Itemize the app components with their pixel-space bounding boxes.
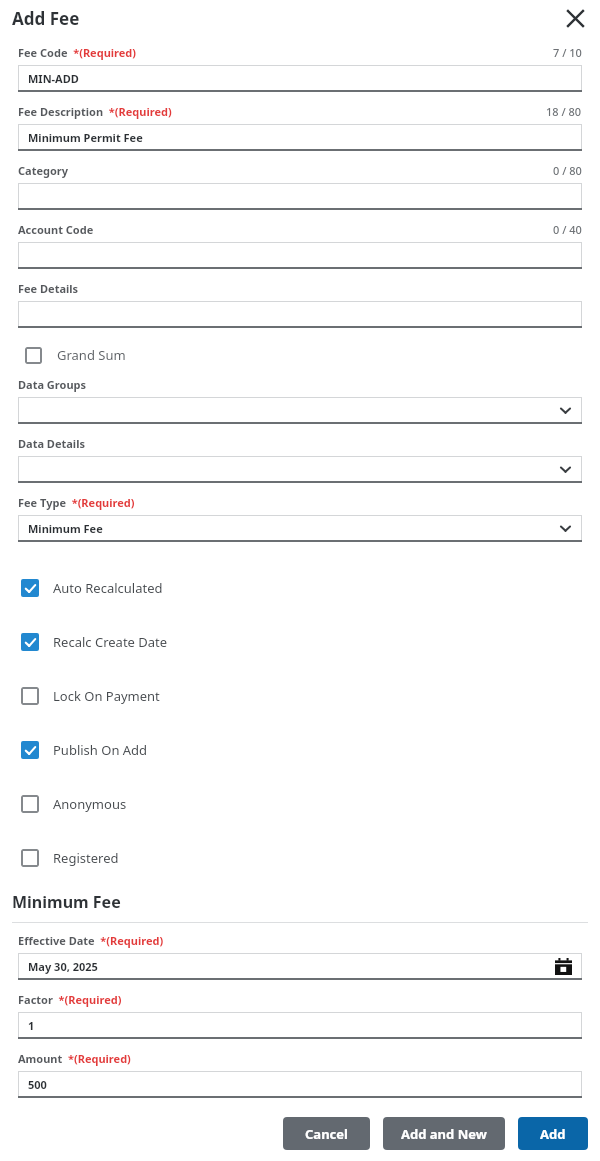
- staticText: 7 / 10: [553, 45, 582, 60]
- staticText: May 30, 2025: [28, 959, 98, 974]
- staticText: 0 / 80: [553, 163, 582, 178]
- button[interactable]: Minimum Fee: [18, 515, 582, 542]
- staticText: MIN-ADD: [28, 71, 79, 86]
- staticText: Minimum Fee: [12, 891, 121, 913]
- button[interactable]: Add: [518, 1117, 588, 1150]
- button[interactable]: Grand Sum: [18, 342, 582, 368]
- staticText: Lock On Payment: [53, 687, 160, 705]
- staticText: Fee Details: [18, 281, 79, 296]
- button[interactable]: Cancel: [283, 1117, 370, 1150]
- staticText: 500: [28, 1077, 47, 1092]
- staticText: Factor *(Required): [18, 992, 122, 1007]
- staticText: Add Fee: [12, 7, 80, 30]
- staticText: Anonymous: [53, 795, 127, 813]
- button[interactable]: [18, 456, 582, 483]
- staticText: Publish On Add: [53, 741, 148, 759]
- staticText: Data Details: [18, 436, 85, 451]
- staticText: Amount *(Required): [18, 1051, 131, 1066]
- staticText: Grand Sum: [57, 346, 126, 364]
- staticText: Fee Description *(Required): [18, 104, 172, 119]
- button[interactable]: 500: [18, 1071, 582, 1098]
- button[interactable]: Anonymous: [21, 777, 579, 831]
- staticText: Fee Type *(Required): [18, 495, 135, 510]
- staticText: Registered: [53, 849, 119, 867]
- button[interactable]: [18, 301, 582, 328]
- button[interactable]: Auto Recalculated: [21, 561, 579, 615]
- staticText: Data Groups: [18, 377, 87, 392]
- button[interactable]: [18, 183, 582, 210]
- button[interactable]: May 30, 2025: [18, 953, 582, 980]
- button[interactable]: Registered: [21, 831, 579, 885]
- staticText: Fee Code *(Required): [18, 45, 137, 60]
- button[interactable]: Lock On Payment: [21, 669, 579, 723]
- staticText: Minimum Fee: [28, 521, 103, 536]
- button[interactable]: 1: [18, 1012, 582, 1039]
- button[interactable]: [18, 397, 582, 424]
- staticText: 1: [28, 1018, 35, 1033]
- staticText: 18 / 80: [546, 104, 582, 119]
- staticText: Cancel: [305, 1125, 348, 1143]
- staticText: Recalc Create Date: [53, 633, 168, 651]
- staticText: Minimum Permit Fee: [28, 130, 143, 145]
- staticText: Effective Date *(Required): [18, 933, 164, 948]
- staticText: Add: [540, 1125, 566, 1143]
- button[interactable]: [18, 242, 582, 269]
- staticText: Auto Recalculated: [53, 579, 163, 597]
- button[interactable]: Close: [560, 3, 590, 33]
- button[interactable]: Recalc Create Date: [21, 615, 579, 669]
- staticText: 0 / 40: [553, 222, 582, 237]
- button[interactable]: Minimum Permit Fee: [18, 124, 582, 151]
- button[interactable]: Add and New: [383, 1117, 505, 1150]
- button[interactable]: Publish On Add: [21, 723, 579, 777]
- button[interactable]: MIN-ADD: [18, 65, 582, 92]
- staticText: Add and New: [401, 1125, 487, 1143]
- staticText: Account Code: [18, 222, 94, 237]
- staticText: Category: [18, 163, 69, 178]
